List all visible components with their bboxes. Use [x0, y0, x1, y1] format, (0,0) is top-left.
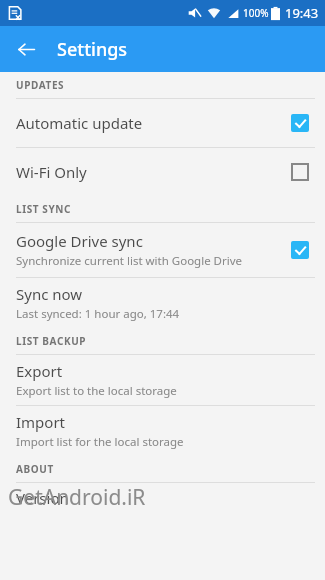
staticText: LIST SYNC: [16, 202, 72, 216]
staticText: Sync now: [16, 284, 83, 304]
staticText: Version: [16, 488, 69, 508]
button[interactable]: Automatic update: [0, 99, 325, 147]
staticText: UPDATES: [16, 78, 65, 92]
button[interactable]: Back: [8, 31, 44, 67]
staticText: Export list to the local storage: [16, 383, 177, 399]
button[interactable]: Google Drive sync: [0, 223, 325, 277]
staticText: Last synced: 1 hour ago, 17:44: [16, 306, 180, 322]
staticText: Import list for the local storage: [16, 434, 184, 450]
staticText: Google Drive sync: [16, 231, 143, 251]
button[interactable]: Import: [0, 406, 325, 456]
staticText: Synchronize current list with Google Dri…: [16, 253, 243, 269]
button[interactable]: Version: [0, 483, 325, 513]
staticText: Export: [16, 361, 63, 381]
staticText: LIST BACKUP: [16, 334, 87, 348]
staticText: Automatic update: [16, 113, 143, 133]
button[interactable]: Sync now: [0, 278, 325, 328]
staticText: Settings: [57, 37, 128, 62]
staticText: ABOUT: [16, 462, 54, 476]
staticText: 100%: [243, 6, 269, 20]
button[interactable]: Wi-Fi Only: [0, 148, 325, 196]
staticText: GetAndroid.iR: [8, 483, 146, 512]
staticText: Import: [16, 412, 66, 432]
button[interactable]: Export: [0, 355, 325, 405]
staticText: Wi-Fi Only: [16, 162, 87, 182]
staticText: 19:43: [285, 4, 319, 22]
